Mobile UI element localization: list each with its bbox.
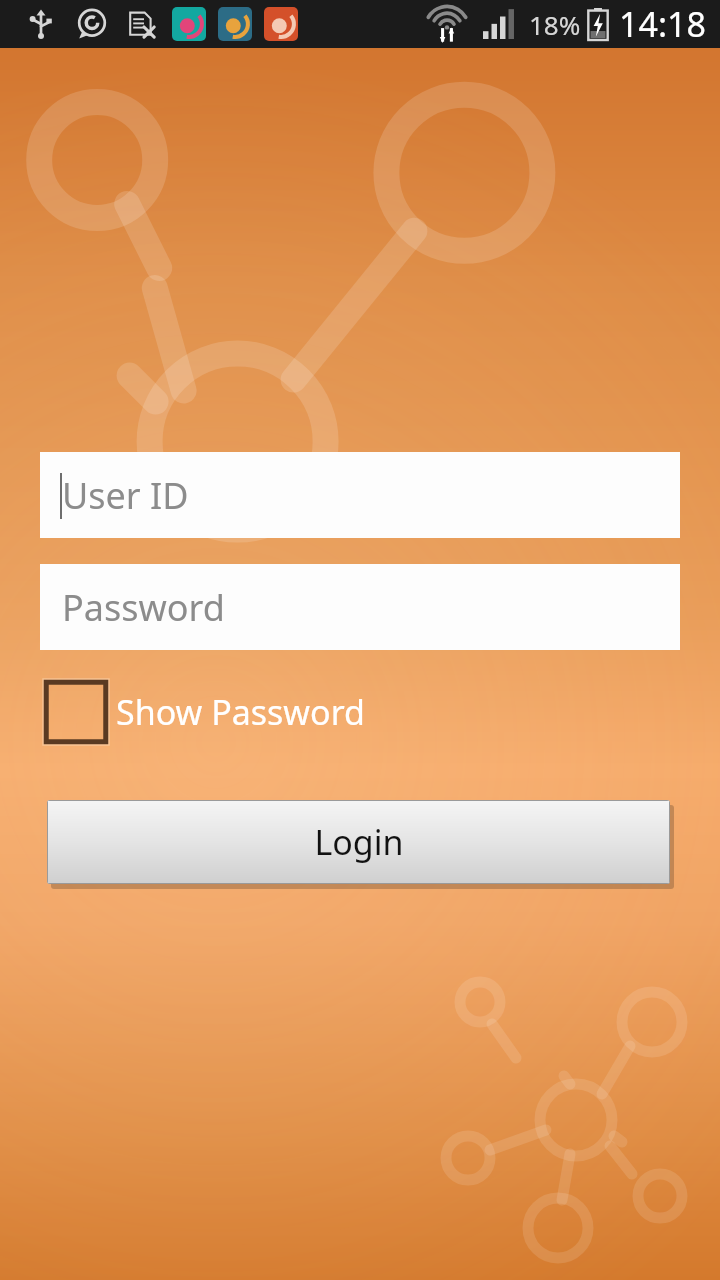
button[interactable]: Password — [40, 564, 680, 650]
staticText: 18% — [529, 7, 581, 42]
button[interactable]: Login — [47, 800, 670, 884]
staticText: 14:18 — [619, 1, 706, 47]
staticText: Password — [62, 583, 225, 632]
button[interactable]: Show Password — [44, 680, 365, 744]
staticText: User ID — [62, 471, 189, 520]
button[interactable]: User ID — [40, 452, 680, 538]
staticText: Login — [314, 819, 404, 865]
staticText: Show Password — [116, 689, 365, 735]
